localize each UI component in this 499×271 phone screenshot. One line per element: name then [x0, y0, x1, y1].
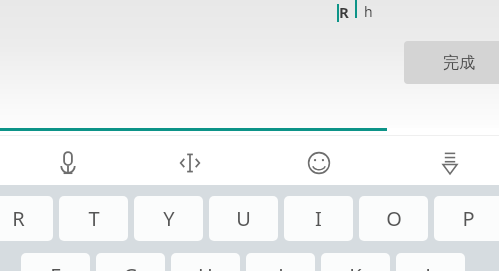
- button[interactable]: L: [396, 253, 465, 271]
- staticText: O: [386, 205, 402, 232]
- staticText: T: [88, 205, 100, 232]
- button[interactable]: K: [321, 253, 390, 271]
- staticText: R: [339, 2, 349, 22]
- button[interactable]: 完成: [404, 41, 499, 84]
- button[interactable]: R: [0, 196, 53, 241]
- button[interactable]: P: [434, 196, 499, 241]
- button[interactable]: H: [171, 253, 240, 271]
- button[interactable]: F: [21, 253, 90, 271]
- button[interactable]: Hide keyboard: [426, 139, 474, 187]
- staticText: Y: [163, 205, 175, 232]
- button[interactable]: U: [209, 196, 278, 241]
- staticText: G: [123, 262, 138, 271]
- button[interactable]: Emoji: [295, 139, 343, 187]
- staticText: F: [50, 262, 61, 271]
- staticText: P: [462, 205, 475, 232]
- button[interactable]: Y: [134, 196, 203, 241]
- staticText: U: [236, 205, 251, 232]
- staticText: J: [278, 262, 284, 271]
- staticText: h: [364, 2, 373, 21]
- staticText: I: [315, 205, 322, 232]
- button[interactable]: G: [96, 253, 165, 271]
- button[interactable]: Move cursor: [166, 139, 214, 187]
- staticText: H: [198, 262, 213, 271]
- button[interactable]: Voice input: [44, 139, 92, 187]
- staticText: 完成: [443, 53, 475, 73]
- button[interactable]: O: [359, 196, 428, 241]
- staticText: L: [425, 262, 436, 271]
- staticText: R: [12, 205, 25, 232]
- staticText: K: [349, 262, 362, 271]
- button[interactable]: J: [246, 253, 315, 271]
- button[interactable]: T: [59, 196, 128, 241]
- button[interactable]: I: [284, 196, 353, 241]
